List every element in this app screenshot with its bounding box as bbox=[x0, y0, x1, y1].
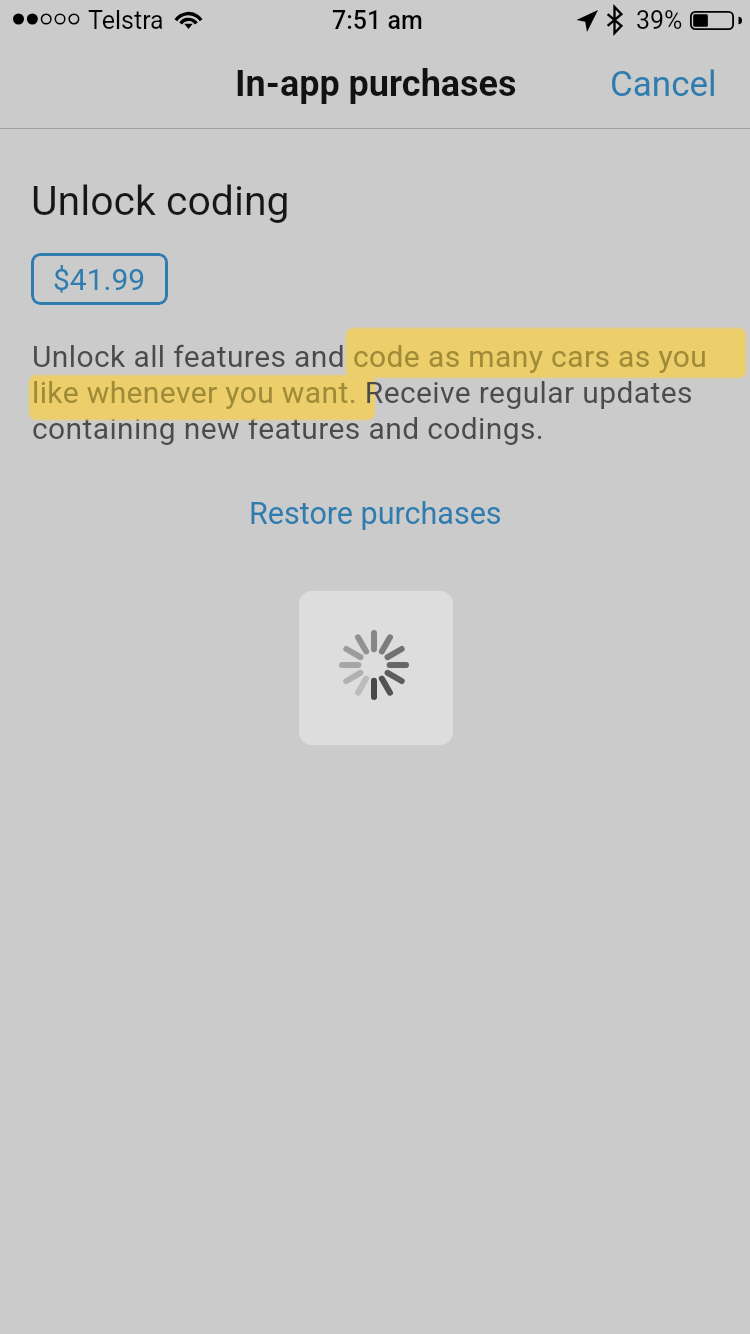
staticText: Telstra bbox=[88, 6, 164, 35]
staticText: Receive regular updates bbox=[357, 375, 693, 410]
button[interactable]: Cancel bbox=[592, 48, 735, 121]
staticText: like whenever you want. bbox=[32, 375, 357, 410]
staticText: Cancel bbox=[610, 64, 717, 105]
staticText: code as many cars as you bbox=[353, 339, 708, 374]
staticText: 39% bbox=[636, 6, 683, 35]
staticText: Unlock coding bbox=[31, 177, 290, 225]
staticText: $41.99 bbox=[53, 262, 146, 297]
staticText: Unlock all features and bbox=[32, 339, 353, 374]
staticText: 7:51 am bbox=[332, 6, 423, 35]
button[interactable]: $41.99 bbox=[31, 253, 168, 305]
staticText: In-app purchases bbox=[235, 63, 517, 105]
staticText: containing new features and codings. bbox=[32, 411, 545, 446]
staticText: Restore purchases bbox=[249, 496, 502, 532]
button[interactable]: Restore purchases bbox=[225, 487, 526, 541]
